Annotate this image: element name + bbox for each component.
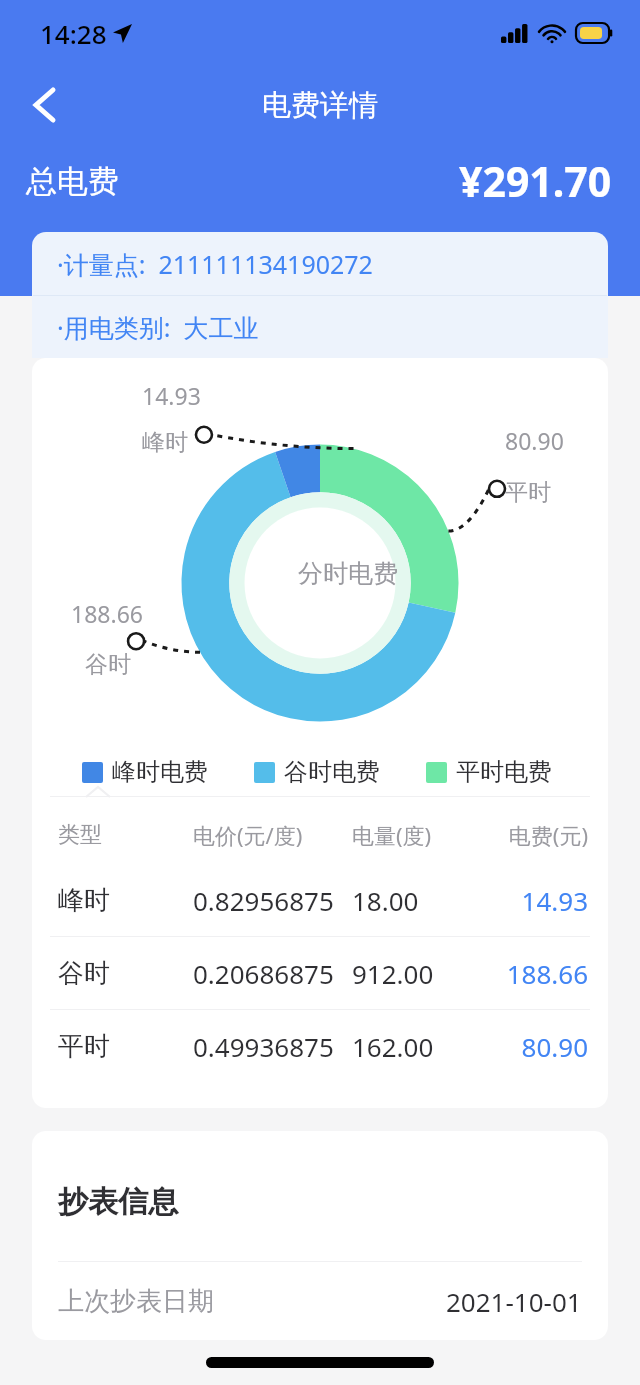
staticText: ·用电类别: 大工业 <box>57 310 259 344</box>
staticText: 14:28 <box>40 16 107 51</box>
staticText: 峰时 <box>58 884 193 917</box>
button[interactable]: Back <box>18 79 70 131</box>
button[interactable]: 平时电费 <box>426 757 552 787</box>
staticText: 电量(度) <box>352 820 508 850</box>
staticText: 平时 <box>505 478 551 507</box>
staticText: 电价(元/度) <box>193 820 352 850</box>
staticText: 上次抄表日期 <box>58 1285 214 1318</box>
staticText: 0.49936875 <box>193 1029 352 1064</box>
button[interactable]: 谷时电费 <box>254 757 380 787</box>
button[interactable]: 谷时 <box>58 937 588 1009</box>
button[interactable]: 平时 <box>58 1010 588 1082</box>
staticText: ·计量点: 211111134190272 <box>57 247 373 281</box>
staticText: 类型 <box>58 821 193 849</box>
staticText: 912.00 <box>352 956 506 991</box>
staticText: 分时电费 <box>298 558 398 589</box>
button[interactable]: 峰时电费 <box>82 757 208 787</box>
staticText: 电费(元) <box>508 820 588 850</box>
staticText: 2021-10-01 <box>446 1284 582 1319</box>
staticText: 18.00 <box>352 883 521 918</box>
staticText: 188.66 <box>506 956 588 991</box>
button[interactable]: 峰时 <box>58 864 588 936</box>
staticText: 162.00 <box>352 1029 521 1064</box>
staticText: 电费详情 <box>262 87 378 124</box>
staticText: 14.93 <box>521 883 588 918</box>
staticText: 80.90 <box>505 425 564 456</box>
staticText: 抄表信息 <box>58 1183 178 1221</box>
staticText: 平时电费 <box>456 757 552 787</box>
staticText: 峰时 <box>142 428 188 457</box>
staticText: 总电费 <box>26 162 119 201</box>
staticText: 14.93 <box>142 380 201 411</box>
staticText: 谷时 <box>58 957 193 990</box>
staticText: 峰时电费 <box>112 757 208 787</box>
staticText: 0.20686875 <box>193 956 352 991</box>
staticText: 平时 <box>58 1030 193 1063</box>
staticText: ¥291.70 <box>459 153 612 209</box>
staticText: 80.90 <box>521 1029 588 1064</box>
staticText: 188.66 <box>71 598 143 629</box>
staticText: 0.82956875 <box>193 883 352 918</box>
staticText: 谷时电费 <box>284 757 380 787</box>
staticText: 谷时 <box>85 650 131 679</box>
